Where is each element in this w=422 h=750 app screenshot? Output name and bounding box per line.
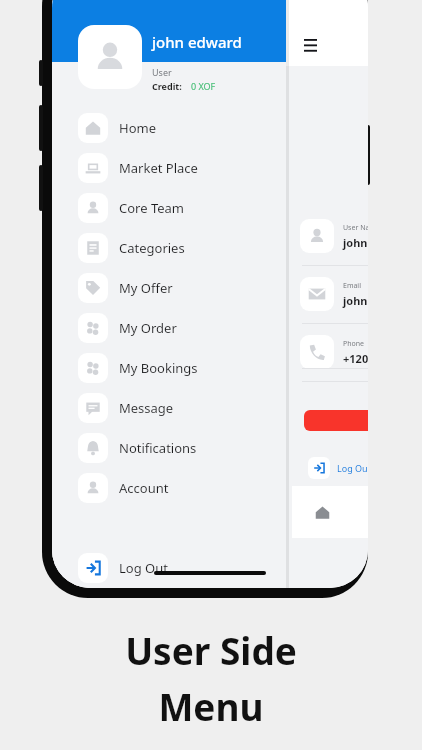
staticText: My Offer	[119, 279, 173, 297]
staticText: john	[343, 235, 368, 250]
staticText: User Name	[343, 223, 368, 233]
staticText: Menu	[158, 681, 264, 731]
staticText: Message	[119, 399, 174, 417]
staticText: Log Ou	[337, 462, 368, 474]
button[interactable]: My Order	[52, 308, 286, 348]
button[interactable]: Home	[310, 500, 334, 524]
button[interactable]: My Bookings	[52, 348, 286, 388]
staticText: Phone	[343, 339, 365, 349]
staticText: Categories	[119, 239, 185, 257]
button[interactable]: Core Team	[52, 188, 286, 228]
button[interactable]: Open menu	[297, 32, 323, 58]
button[interactable]: Log Ou	[308, 455, 368, 481]
button[interactable]: Log Out	[52, 548, 286, 588]
button[interactable]: Notifications	[52, 428, 286, 468]
button[interactable]: Account	[52, 468, 286, 508]
button[interactable]: Market Place	[52, 148, 286, 188]
button[interactable]: My Offer	[52, 268, 286, 308]
staticText: My Bookings	[119, 359, 198, 377]
staticText: john edward	[152, 32, 242, 52]
button[interactable]: Email	[300, 273, 368, 315]
staticText: Log Out	[119, 559, 168, 577]
staticText: john	[343, 293, 368, 308]
button[interactable]: Categories	[52, 228, 286, 268]
staticText: +120	[343, 351, 368, 366]
button[interactable]	[304, 410, 368, 431]
staticText: Home	[119, 119, 156, 137]
staticText: Core Team	[119, 199, 185, 217]
staticText: Market Place	[119, 159, 198, 177]
staticText: User	[152, 66, 172, 78]
button[interactable]: Home	[52, 108, 286, 148]
button[interactable]: Phone	[300, 331, 368, 373]
staticText: Credit:	[152, 80, 182, 92]
staticText: My Order	[119, 319, 177, 337]
staticText: User Side	[125, 625, 297, 675]
button[interactable]: Message	[52, 388, 286, 428]
staticText: Notifications	[119, 439, 197, 457]
staticText: 0 XOF	[191, 80, 216, 92]
staticText: Email	[343, 281, 361, 291]
button[interactable]: User Name	[300, 215, 368, 257]
staticText: Account	[119, 479, 169, 497]
